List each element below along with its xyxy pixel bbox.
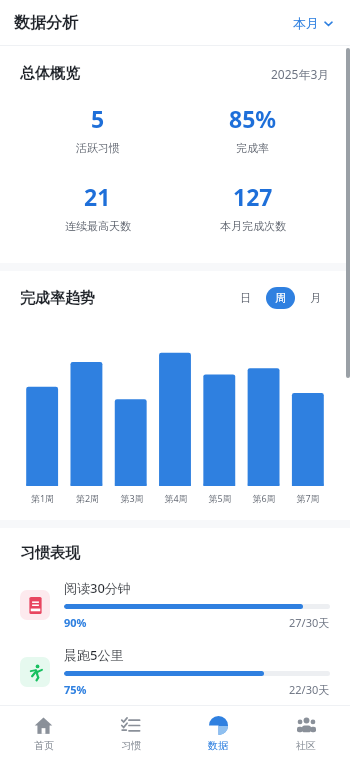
staticText: 习惯 [121, 739, 141, 752]
staticText: 完成率趋势 [20, 289, 95, 308]
staticText: 第2周 [65, 492, 110, 504]
button[interactable]: 阅读30分钟 [20, 579, 330, 630]
staticText: 2025年3月 [271, 66, 330, 82]
button[interactable]: 85% [175, 103, 330, 155]
staticText: 27/30天 [289, 615, 330, 630]
button[interactable]: 本月 [289, 11, 338, 35]
staticText: 活跃习惯 [76, 141, 120, 155]
staticText: 连续最高天数 [65, 219, 131, 233]
button[interactable]: 月 [301, 287, 330, 309]
staticText: 90% [64, 615, 87, 630]
staticText: 习惯表现 [20, 544, 80, 563]
staticText: 127 [233, 181, 273, 212]
staticText: 21 [84, 181, 111, 212]
staticText: 第1周 [20, 492, 65, 504]
button[interactable]: 日 [231, 287, 260, 309]
staticText: 晨跑5公里 [64, 646, 124, 664]
staticText: 75% [64, 682, 87, 697]
button[interactable]: 周 [266, 287, 295, 309]
staticText: 完成率 [236, 141, 269, 155]
staticText: 本月完成次数 [220, 219, 286, 233]
staticText: 数据 [208, 739, 228, 752]
staticText: 85% [229, 103, 277, 134]
staticText: 总体概览 [20, 64, 80, 83]
staticText: 第6周 [242, 492, 286, 504]
staticText: 第3周 [110, 492, 154, 504]
staticText: 社区 [296, 739, 316, 752]
staticText: 日 [240, 291, 251, 305]
staticText: 第7周 [286, 492, 330, 504]
staticText: 阅读30分钟 [64, 579, 131, 597]
staticText: 月 [310, 291, 321, 305]
button[interactable]: 5 [20, 103, 175, 155]
staticText: 第5周 [198, 492, 242, 504]
staticText: 首页 [34, 739, 54, 752]
button[interactable]: 21 [20, 181, 175, 233]
button[interactable]: 127 [175, 181, 330, 233]
staticText: 22/30天 [289, 682, 330, 697]
staticText: 本月 [293, 15, 319, 31]
staticText: 数据分析 [14, 13, 78, 33]
button[interactable]: 首页 [0, 706, 87, 762]
button[interactable]: 晨跑5公里 [20, 646, 330, 697]
button[interactable]: 习惯 [87, 706, 174, 762]
button[interactable]: 数据 [174, 706, 262, 762]
staticText: 第4周 [154, 492, 198, 504]
button[interactable]: 社区 [262, 706, 350, 762]
staticText: 周 [275, 291, 286, 305]
staticText: 5 [91, 103, 105, 134]
